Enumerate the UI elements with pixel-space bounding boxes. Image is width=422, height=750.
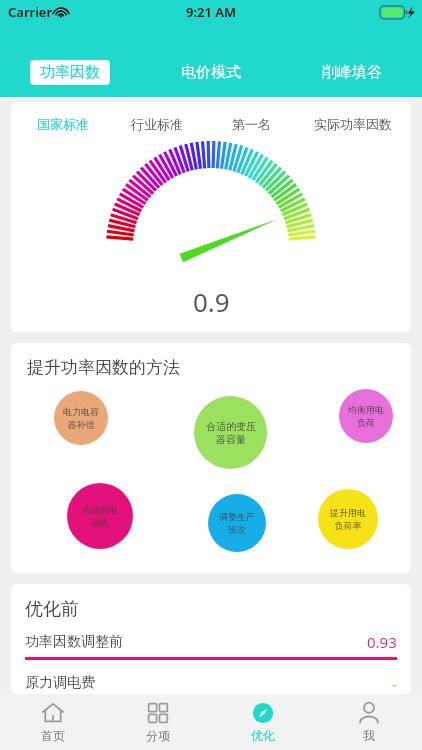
staticText: 首页: [41, 728, 65, 743]
button[interactable]: 实际功率因数: [298, 114, 407, 134]
button[interactable]: 优化: [210, 694, 316, 750]
button[interactable]: 合适的电 动机: [67, 483, 133, 549]
button[interactable]: 均衡用电 负荷: [339, 389, 393, 443]
staticText: 削峰填谷: [322, 63, 382, 82]
staticText: 调整生产 班次: [219, 511, 255, 535]
button[interactable]: 第一名: [204, 114, 298, 134]
button[interactable]: 调整生产 班次: [208, 494, 266, 552]
button[interactable]: 功率因数调整前: [25, 632, 397, 674]
button[interactable]: 国家标准: [15, 114, 110, 134]
staticText: 电力电容 器补偿: [63, 406, 99, 430]
staticText: 0.93: [367, 632, 397, 652]
staticText: 9:21 AM: [186, 3, 237, 21]
staticText: -: [392, 674, 397, 689]
button[interactable]: 电力电容 器补偿: [54, 391, 108, 445]
button[interactable]: 行业标准: [110, 114, 204, 134]
staticText: 优化: [251, 728, 275, 743]
staticText: 实际功率因数: [314, 116, 392, 132]
staticText: 功率因数: [40, 63, 100, 82]
staticText: 均衡用电 负荷: [348, 404, 384, 428]
staticText: 第一名: [232, 116, 271, 132]
staticText: 我: [363, 728, 375, 743]
staticText: 功率因数调整前: [25, 633, 367, 651]
button[interactable]: 提升用电 负荷率: [318, 489, 378, 549]
staticText: 0.9: [193, 284, 230, 319]
staticText: 分项: [146, 728, 170, 743]
staticText: 行业标准: [131, 116, 183, 132]
button[interactable]: 原力调电费: [25, 674, 397, 694]
staticText: 国家标准: [37, 116, 89, 132]
button[interactable]: 我: [316, 694, 422, 750]
staticText: 合适的变压 器容量: [206, 420, 256, 446]
button[interactable]: 功率因数: [30, 60, 110, 85]
button[interactable]: 分项: [105, 694, 210, 750]
staticText: 原力调电费: [25, 674, 392, 689]
button[interactable]: 削峰填谷: [281, 63, 422, 82]
staticText: 电价模式: [181, 63, 241, 82]
staticText: Carrier: [8, 3, 53, 21]
staticText: 提升用电 负荷率: [330, 507, 366, 531]
staticText: 合适的电 动机: [82, 504, 118, 528]
staticText: 提升功率因数的方法: [27, 357, 180, 378]
button[interactable]: 合适的变压 器容量: [194, 396, 267, 469]
button[interactable]: 电价模式: [140, 63, 281, 82]
button[interactable]: 首页: [0, 694, 105, 750]
staticText: 优化前: [25, 598, 79, 621]
